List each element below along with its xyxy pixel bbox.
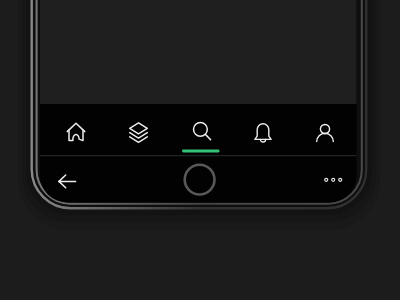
button[interactable] [170, 104, 232, 155]
button[interactable] [107, 104, 169, 155]
button[interactable] [43, 157, 91, 205]
button[interactable] [232, 104, 294, 155]
button[interactable] [313, 160, 353, 200]
button[interactable] [294, 104, 356, 155]
button[interactable] [178, 158, 221, 201]
button[interactable] [45, 104, 107, 155]
